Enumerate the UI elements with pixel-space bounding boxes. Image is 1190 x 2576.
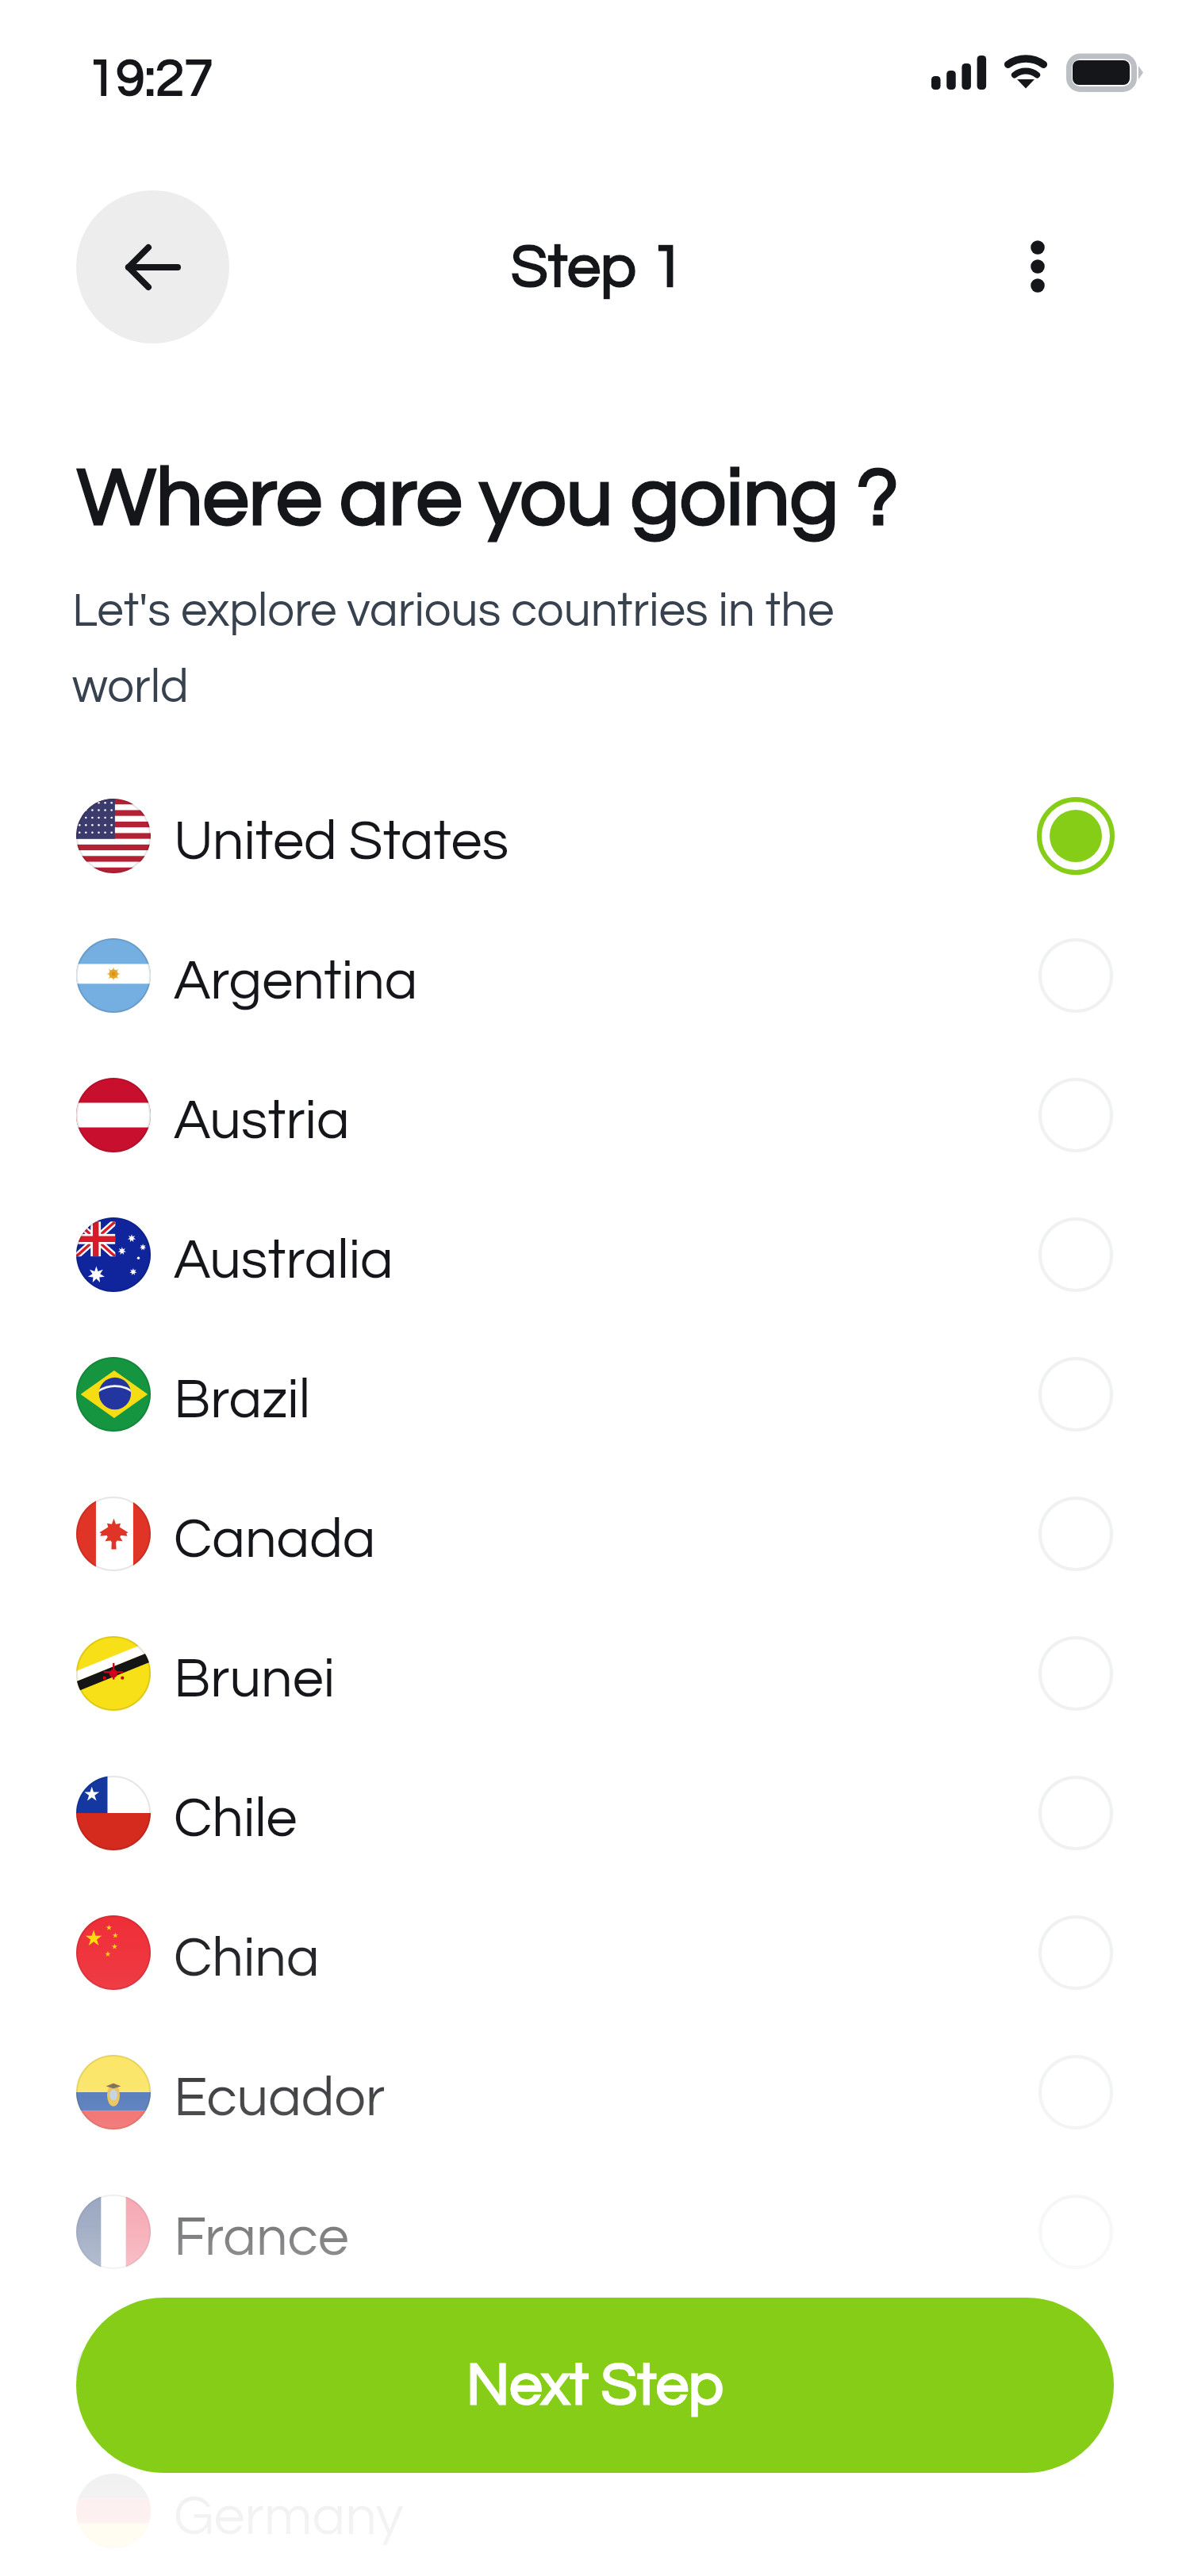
button[interactable]: Brazil [0,1324,1190,1464]
staticText: Brunei [174,1651,336,1708]
button[interactable]: France [0,2162,1190,2302]
button[interactable]: Chile [0,1743,1190,1883]
button[interactable]: China [0,1883,1190,2022]
button[interactable]: Argentina [0,906,1190,1045]
button[interactable]: More options [998,211,1077,322]
staticText: Step 1 [511,237,685,299]
staticText: United States [174,814,509,871]
staticText: Brazil [174,1372,310,1429]
staticText: Ecuador [174,2070,386,2127]
staticText: Where are you going ? [77,457,899,542]
button[interactable]: Germany [0,2441,1190,2576]
button[interactable]: Austria [0,1045,1190,1185]
staticText: 19:27 [87,52,213,106]
button[interactable]: Ecuador [0,2022,1190,2162]
staticText: Germany [174,2489,404,2546]
button[interactable]: Canada [0,1464,1190,1604]
staticText: Argentina [174,953,418,1010]
staticText: Austria [174,1093,350,1150]
button[interactable]: Australia [0,1185,1190,1324]
staticText: China [174,1930,320,1988]
button[interactable]: Back [76,190,229,343]
staticText: Let's explore various countries in the w… [72,587,873,711]
staticText: Australia [174,1232,393,1290]
staticText: Chile [174,1791,297,1848]
button[interactable]: Brunei [0,1604,1190,1743]
staticText: Canada [174,1512,376,1569]
staticText: France [174,2210,349,2267]
button[interactable]: Finland [0,2302,1190,2441]
staticText: Next Step [466,2356,724,2416]
button[interactable]: Next Step [76,2298,1114,2473]
button[interactable]: United States [0,766,1190,906]
